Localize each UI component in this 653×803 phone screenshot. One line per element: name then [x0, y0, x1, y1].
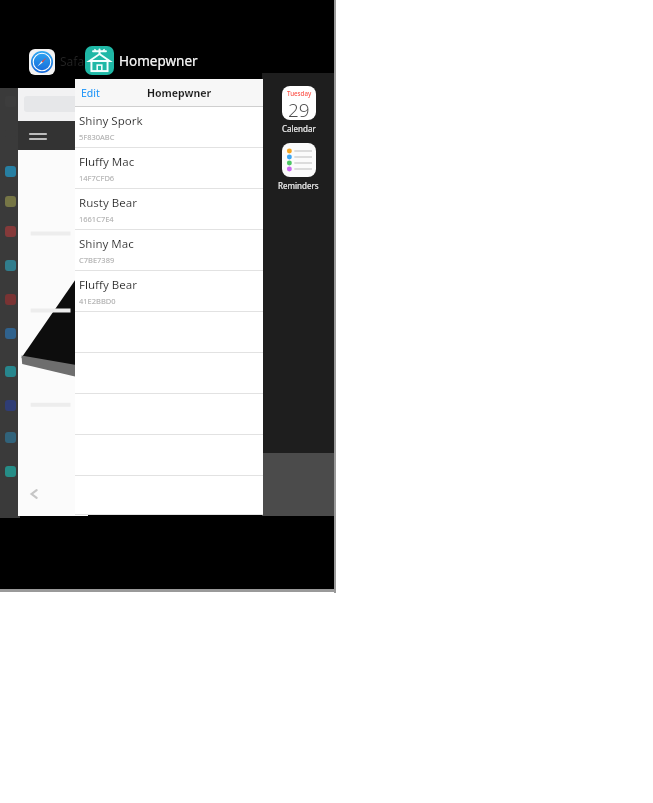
staticText: Shiny Spork: [79, 113, 143, 129]
staticText: Safari: [60, 53, 93, 69]
staticText: Homepwner: [119, 52, 198, 70]
button[interactable]: Homepwner: [85, 46, 114, 75]
button[interactable]: Safari: [29, 49, 55, 75]
staticText: 29: [288, 97, 310, 120]
staticText: Calendar: [282, 123, 316, 134]
staticText: Rusty Bear: [79, 195, 137, 211]
staticText: 14F7CFD6: [79, 173, 115, 183]
button[interactable]: Shiny Mac: [75, 230, 263, 271]
button[interactable]: Edit: [81, 86, 100, 100]
staticText: 41E2BBD0: [79, 296, 116, 306]
staticText: Edit: [81, 86, 100, 100]
button[interactable]: Fluffy Bear: [75, 271, 263, 312]
staticText: Reminders: [278, 180, 319, 191]
staticText: Homepwner: [147, 86, 212, 100]
staticText: 5F830ABC: [79, 132, 115, 142]
button[interactable]: Edit: [75, 79, 263, 515]
button[interactable]: Reminders: [282, 143, 316, 177]
button[interactable]: Calendar: [282, 86, 316, 120]
staticText: Fluffy Mac: [79, 154, 135, 170]
staticText: 1661C7E4: [79, 214, 114, 224]
button[interactable]: Shiny Spork: [75, 107, 263, 148]
button[interactable]: Rusty Bear: [75, 189, 263, 230]
button[interactable]: Fluffy Mac: [75, 148, 263, 189]
staticText: Fluffy Bear: [79, 277, 137, 293]
button[interactable]: Safari app card: [18, 88, 88, 516]
staticText: Shiny Mac: [79, 236, 134, 252]
staticText: Tuesday: [287, 89, 312, 97]
staticText: C7BE7389: [79, 255, 115, 265]
